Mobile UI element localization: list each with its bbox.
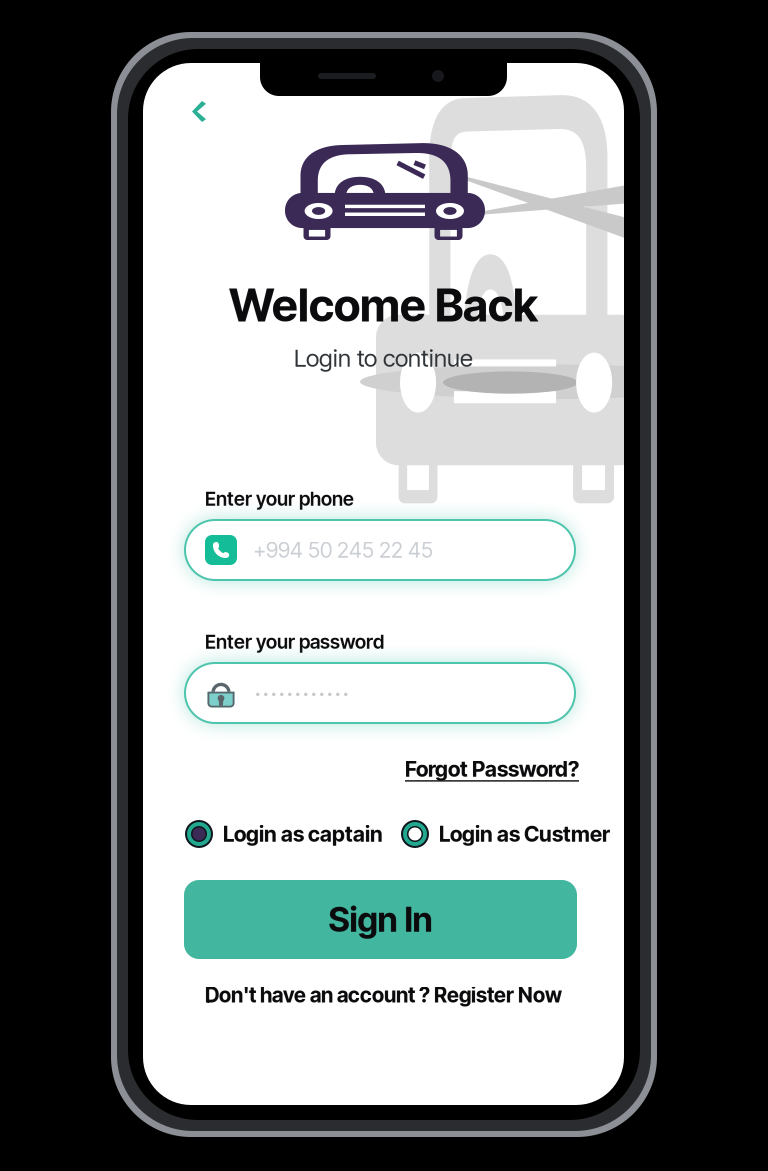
staticText: • • • • • • • • • • • •: [255, 686, 348, 699]
staticText: Don't have an account ? Register Now: [205, 982, 562, 1008]
button[interactable]: Forgot Password?: [405, 756, 579, 782]
button[interactable]: Login as captain: [185, 820, 383, 848]
staticText: Forgot Password?: [405, 756, 579, 782]
staticText: Login to continue: [294, 343, 473, 372]
button[interactable]: Sign In: [184, 880, 577, 959]
staticText: Welcome Back: [229, 278, 538, 332]
button[interactable]: Don't have an account ? Register Now: [143, 981, 624, 1009]
staticText: Sign In: [328, 899, 432, 940]
staticText: Login as Custmer: [439, 821, 610, 847]
staticText: +994 50 245 22 45: [253, 537, 433, 563]
staticText: Enter your password: [205, 630, 384, 653]
staticText: Login as captain: [223, 821, 383, 847]
button[interactable]: Login as Custmer: [401, 820, 610, 848]
button[interactable]: Back: [172, 84, 226, 138]
staticText: Enter your phone: [205, 487, 354, 510]
